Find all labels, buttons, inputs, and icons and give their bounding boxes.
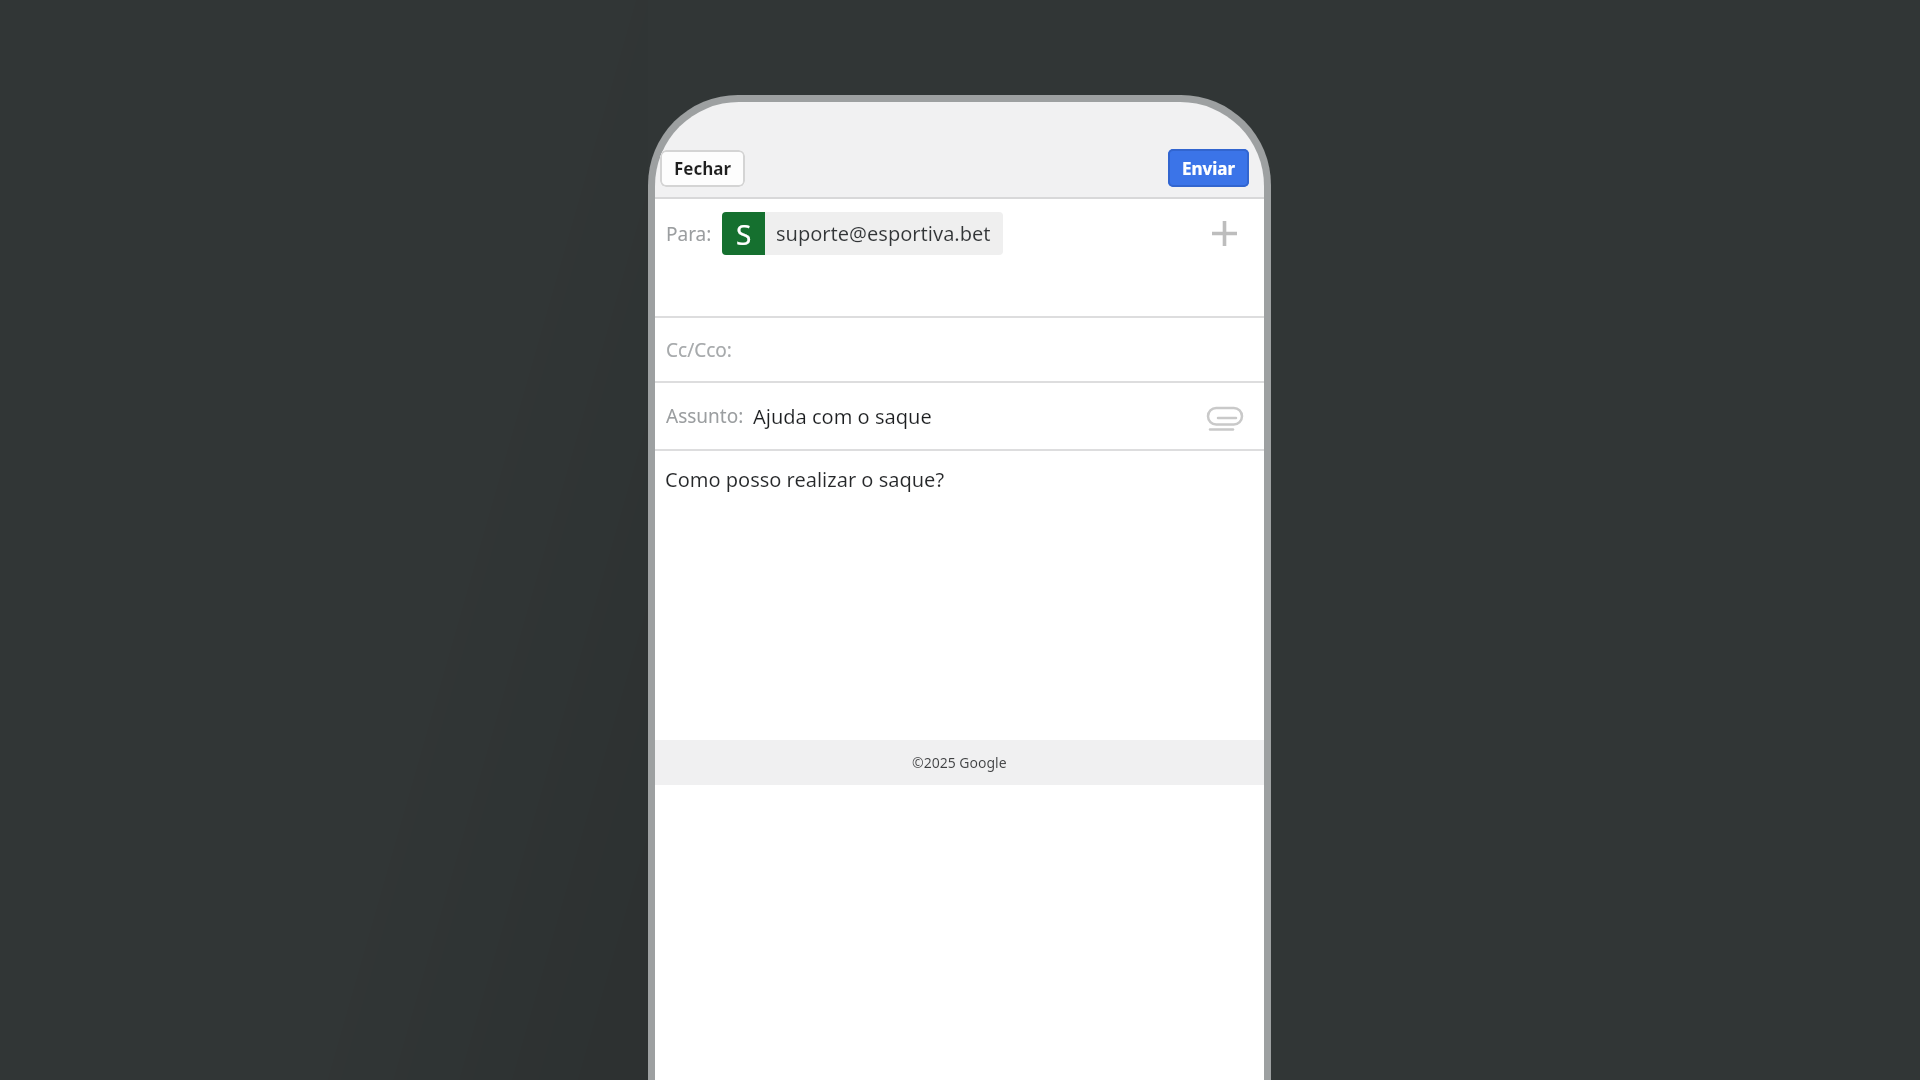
staticText: Cc/Cco:: [666, 337, 732, 363]
staticText: Fechar: [674, 157, 732, 180]
button[interactable]: Fechar: [660, 150, 745, 187]
button[interactable]: Enviar: [1168, 149, 1249, 187]
staticText: ©2025 Google: [912, 753, 1007, 772]
staticText: Assunto:: [666, 403, 744, 429]
button[interactable]: S: [722, 212, 1003, 255]
staticText: S: [736, 215, 752, 253]
button[interactable]: [1205, 403, 1245, 435]
button[interactable]: [1212, 221, 1237, 246]
staticText: Para:: [666, 221, 712, 247]
staticText: Enviar: [1182, 157, 1236, 180]
staticText: Como posso realizar o saque?: [665, 466, 945, 493]
staticText: suporte@esportiva.bet: [776, 220, 991, 247]
staticText: Ajuda com o saque: [753, 403, 932, 430]
